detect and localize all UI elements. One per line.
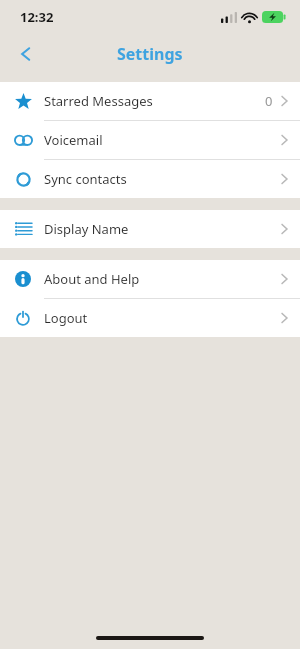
staticText: Sync contacts [44,170,281,188]
button[interactable]: About and Help [0,260,300,298]
staticText: Voicemail [44,131,281,149]
staticText: Starred Messages [44,92,265,110]
button[interactable]: Logout [0,299,300,337]
button[interactable]: Sync contacts [0,160,300,198]
staticText: 0 [265,92,273,110]
button[interactable]: Voicemail [0,121,300,159]
staticText: About and Help [44,270,281,288]
staticText: Settings [117,43,183,65]
button[interactable]: Back [6,34,46,74]
staticText: Logout [44,309,281,327]
button[interactable]: Display Name [0,210,300,248]
button[interactable]: Starred Messages [0,82,300,120]
staticText: 12:32 [20,8,54,26]
staticText: Display Name [44,220,281,238]
